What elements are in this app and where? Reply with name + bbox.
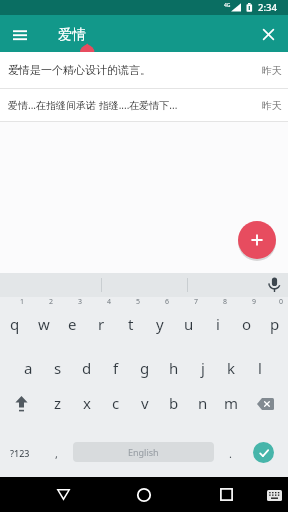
button[interactable]: d	[72, 356, 101, 380]
staticText: ,	[55, 446, 58, 461]
button[interactable]: n	[188, 391, 217, 415]
staticText: t	[128, 314, 134, 334]
button[interactable]: l	[246, 356, 273, 380]
staticText: l	[258, 358, 262, 378]
staticText: h	[169, 358, 179, 378]
staticText: q	[10, 314, 20, 334]
staticText: m	[224, 393, 239, 413]
button[interactable]: p	[261, 312, 288, 336]
staticText: z	[54, 393, 62, 413]
button[interactable]: .	[0, 0, 20, 18]
staticText: p	[270, 314, 280, 334]
button[interactable]: g	[130, 356, 159, 380]
button[interactable]	[250, 393, 280, 415]
staticText: 4G	[224, 2, 231, 9]
button[interactable]: o	[232, 312, 261, 336]
staticText: o	[242, 314, 252, 334]
staticText: e	[68, 314, 77, 334]
button[interactable]: q	[0, 312, 29, 336]
staticText: English	[128, 446, 159, 458]
staticText: s	[54, 358, 62, 378]
button[interactable]: r	[87, 312, 116, 336]
button[interactable]	[48, 482, 78, 507]
button[interactable]: f	[101, 356, 130, 380]
staticText: r	[98, 314, 105, 334]
button[interactable]: k	[217, 356, 246, 380]
staticText: v	[141, 393, 149, 413]
button[interactable]: j	[188, 356, 217, 380]
staticText: a	[24, 358, 33, 378]
button[interactable]	[262, 484, 286, 506]
button[interactable]	[0, 52, 288, 88]
staticText: 4	[107, 297, 112, 307]
staticText: .	[229, 446, 232, 461]
staticText: 0	[279, 297, 284, 307]
button[interactable]	[8, 393, 34, 415]
staticText: i	[216, 314, 220, 334]
staticText: 爱情是一个精心设计的谎言。	[8, 63, 151, 77]
button[interactable]: y	[145, 312, 174, 336]
button[interactable]: u	[174, 312, 203, 336]
staticText: 9	[252, 297, 257, 307]
staticText: w	[38, 314, 50, 334]
staticText: 8	[223, 297, 228, 307]
staticText: 1	[20, 297, 25, 307]
button[interactable]: a	[14, 356, 43, 380]
staticText: ?123	[10, 447, 30, 459]
staticText: 2	[49, 297, 54, 307]
button[interactable]: m	[217, 391, 245, 415]
button[interactable]: English	[73, 442, 214, 462]
staticText: 昨天	[262, 99, 282, 112]
button[interactable]	[129, 482, 159, 507]
button[interactable]: z	[43, 391, 72, 415]
button[interactable]	[6, 25, 34, 45]
button[interactable]: w	[29, 312, 58, 336]
button[interactable]: e	[58, 312, 87, 336]
staticText: 6	[165, 297, 170, 307]
button[interactable]	[256, 23, 280, 46]
button[interactable]: c	[101, 391, 130, 415]
staticText: 昨天	[262, 64, 282, 77]
button[interactable]	[253, 442, 274, 463]
staticText: n	[198, 393, 208, 413]
button[interactable]: t	[116, 312, 145, 336]
staticText: j	[201, 358, 205, 378]
staticText: 5	[136, 297, 141, 307]
button[interactable]	[211, 482, 241, 507]
staticText: x	[83, 393, 91, 413]
button[interactable]	[262, 275, 286, 295]
staticText: 爱情...在指缝间承诺 指缝....在爱情下...	[8, 98, 178, 112]
button[interactable]: i	[203, 312, 232, 336]
staticText: c	[112, 393, 120, 413]
staticText: u	[184, 314, 194, 334]
staticText: b	[169, 393, 179, 413]
button[interactable]	[0, 89, 288, 121]
staticText: 7	[194, 297, 199, 307]
button[interactable]: ,	[0, 0, 20, 18]
button[interactable]: ?123	[0, 0, 28, 18]
staticText: 爱情	[58, 26, 86, 44]
staticText: k	[227, 358, 236, 378]
button[interactable]	[238, 221, 276, 259]
staticText: g	[140, 358, 150, 378]
button[interactable]: x	[72, 391, 101, 415]
staticText: 2:34	[258, 1, 277, 14]
button[interactable]: h	[159, 356, 188, 380]
button[interactable]: s	[43, 356, 72, 380]
button[interactable]: b	[159, 391, 188, 415]
staticText: 3	[78, 297, 83, 307]
staticText: f	[113, 358, 119, 378]
button[interactable]: v	[130, 391, 159, 415]
staticText: d	[82, 358, 92, 378]
staticText: y	[156, 314, 164, 334]
